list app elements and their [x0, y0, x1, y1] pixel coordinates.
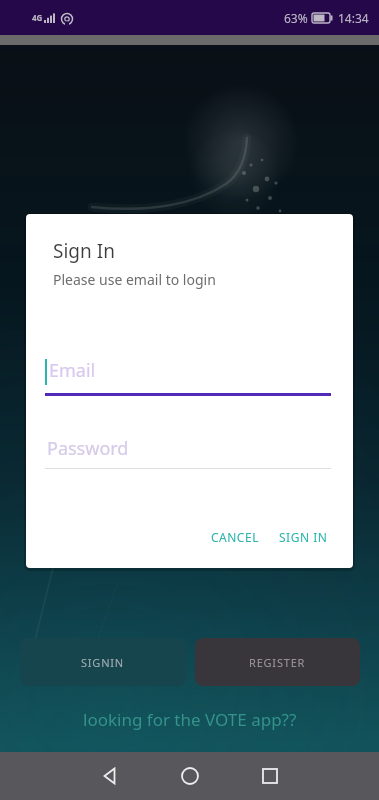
- staticText: SIGNIN: [81, 655, 125, 670]
- staticText: Please use email to login: [53, 270, 216, 289]
- button[interactable]: [78, 752, 142, 800]
- staticText: Sign In: [53, 238, 115, 264]
- button[interactable]: SIGNIN: [20, 638, 186, 686]
- staticText: Email: [49, 358, 96, 383]
- button[interactable]: Password: [45, 424, 334, 472]
- button[interactable]: Email: [45, 346, 334, 398]
- staticText: CANCEL: [211, 529, 259, 545]
- button[interactable]: [238, 752, 302, 800]
- staticText: Password: [47, 436, 129, 461]
- staticText: REGISTER: [249, 655, 306, 670]
- button[interactable]: CANCEL: [202, 519, 268, 555]
- button[interactable]: [158, 752, 222, 800]
- staticText: SIGN IN: [279, 529, 328, 545]
- staticText: 14:34: [338, 10, 369, 26]
- button[interactable]: REGISTER: [195, 638, 360, 686]
- staticText: 4G: [32, 12, 43, 23]
- staticText: 63%: [284, 10, 308, 26]
- staticText: looking for the VOTE app??: [83, 708, 297, 731]
- button[interactable]: looking for the VOTE app??: [73, 700, 307, 739]
- button[interactable]: SIGN IN: [272, 519, 334, 555]
